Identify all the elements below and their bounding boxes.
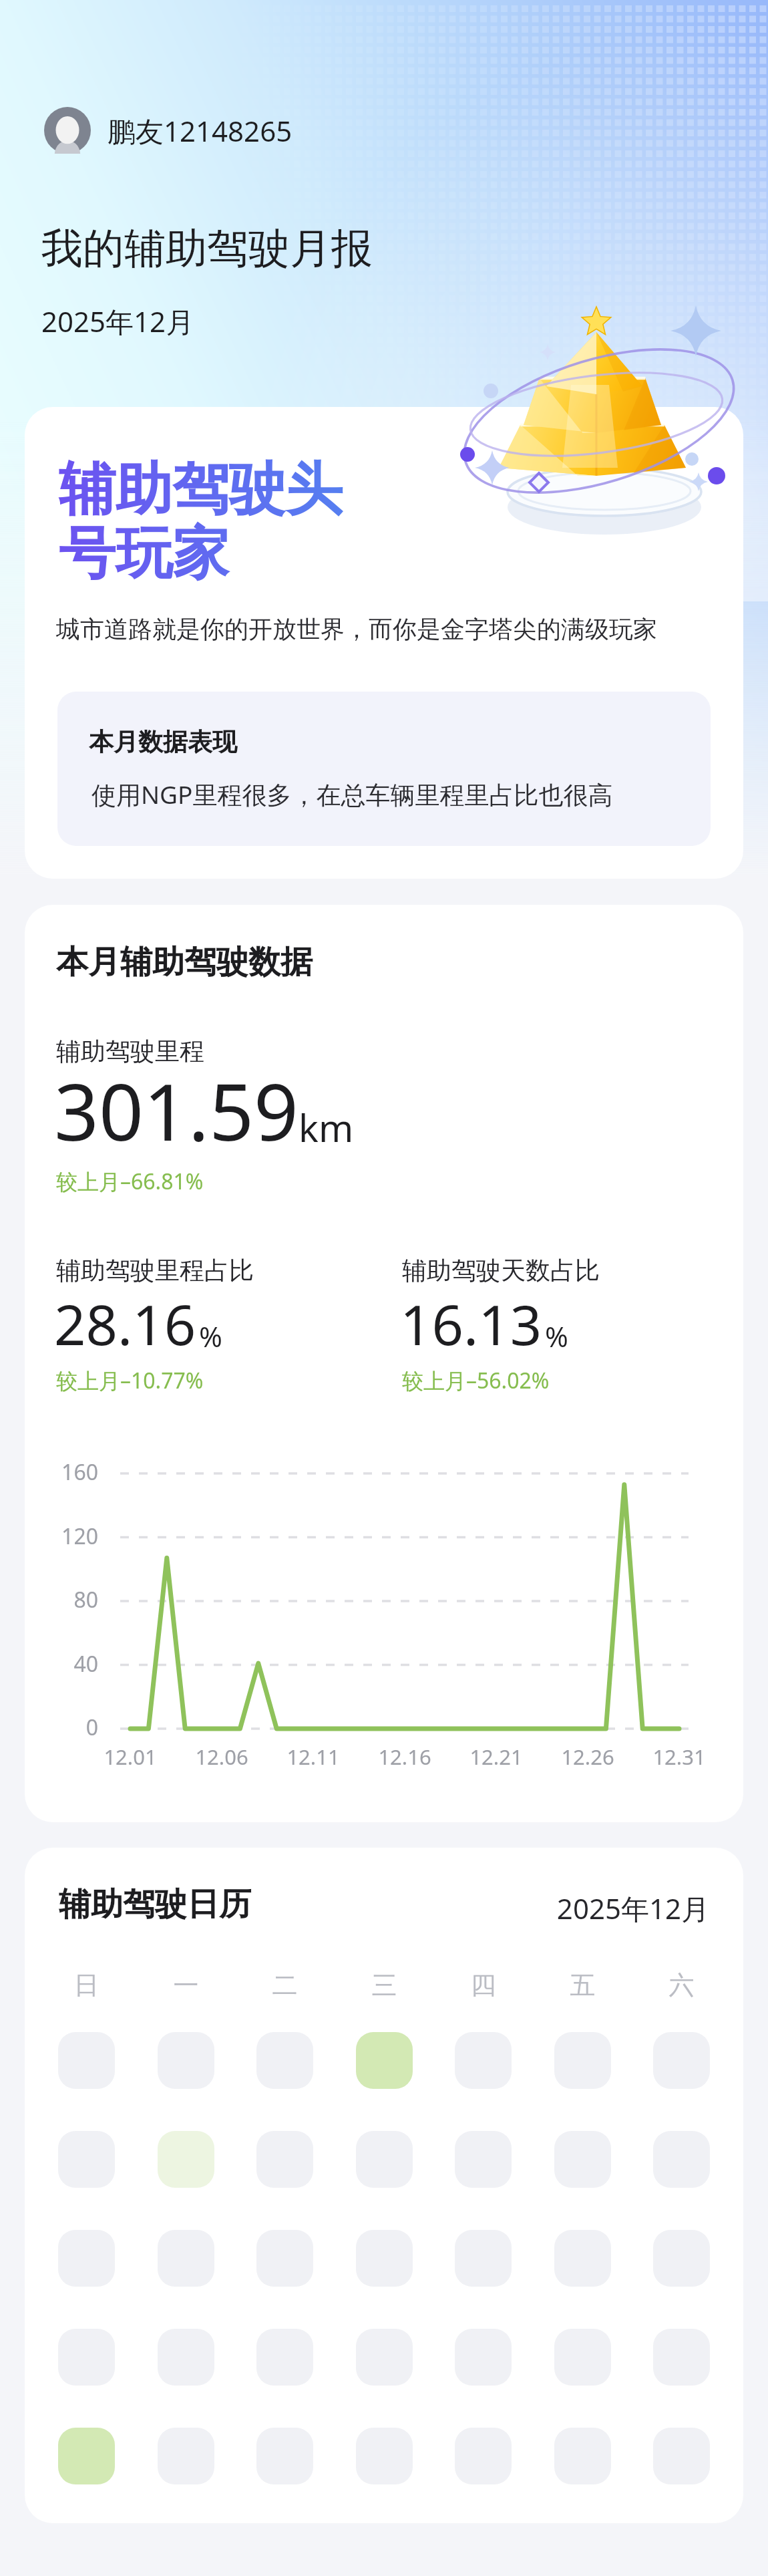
staticText: 使用NGP里程很多，在总车辆里程里占比也很高 [91, 777, 613, 811]
staticText: 12.11 [266, 1743, 360, 1771]
button[interactable] [653, 2131, 710, 2188]
staticText: 2025年12月 [41, 302, 194, 340]
staticText: 六 [653, 1969, 710, 2001]
staticText: 一 [158, 1969, 214, 2001]
staticText: 三 [356, 1969, 413, 2001]
button[interactable] [455, 2131, 512, 2188]
button[interactable] [356, 2428, 413, 2484]
button[interactable] [58, 2230, 115, 2287]
staticText: 28.16 [54, 1286, 196, 1361]
button[interactable] [158, 2329, 214, 2386]
staticText: 辅助驾驶天数占比 [402, 1255, 600, 1286]
button[interactable] [554, 2032, 611, 2089]
staticText: 12.31 [632, 1743, 726, 1771]
staticText: 12.16 [358, 1743, 451, 1771]
staticText: 四 [455, 1969, 512, 2001]
staticText: 五 [554, 1969, 611, 2001]
button[interactable] [554, 2131, 611, 2188]
staticText: 日 [58, 1969, 115, 2001]
staticText: 辅助驾驶日历 [59, 1884, 251, 1924]
button[interactable] [256, 2131, 313, 2188]
button[interactable]: 辅助驾驶头 号玩家 [25, 407, 743, 879]
button[interactable] [653, 2428, 710, 2484]
staticText: 80 [25, 1585, 98, 1614]
button[interactable] [256, 2032, 313, 2089]
button[interactable] [158, 2230, 214, 2287]
button[interactable] [554, 2230, 611, 2287]
button[interactable] [356, 2230, 413, 2287]
button[interactable]: 辅助驾驶日历 [25, 1848, 743, 2523]
staticText: 16.13 [400, 1286, 542, 1361]
button[interactable] [58, 2329, 115, 2386]
button[interactable] [356, 2131, 413, 2188]
staticText: 较上月–56.02% [402, 1366, 550, 1395]
staticText: km [299, 1102, 354, 1153]
button[interactable] [653, 2032, 710, 2089]
button[interactable] [356, 2329, 413, 2386]
staticText: 12.01 [83, 1743, 177, 1771]
button[interactable]: 本月辅助驾驶数据 [25, 905, 743, 1822]
staticText: 较上月–66.81% [56, 1167, 204, 1196]
button[interactable] [58, 2032, 115, 2089]
staticText: 0 [25, 1713, 98, 1742]
button[interactable] [554, 2428, 611, 2484]
staticText: 本月数据表现 [89, 726, 237, 758]
button[interactable] [653, 2230, 710, 2287]
staticText: 本月辅助驾驶数据 [56, 942, 313, 982]
button[interactable] [158, 2032, 214, 2089]
staticText: 城市道路就是你的开放世界，而你是金字塔尖的满级玩家 [56, 614, 657, 644]
button[interactable] [356, 2032, 413, 2089]
staticText: 2025年12月 [492, 1889, 709, 1927]
staticText: 301.59 [54, 1057, 299, 1163]
button[interactable] [554, 2329, 611, 2386]
staticText: % [199, 1317, 222, 1355]
staticText: 二 [256, 1969, 313, 2001]
button[interactable] [455, 2428, 512, 2484]
staticText: 辅助驾驶里程占比 [56, 1255, 254, 1286]
staticText: 辅助驾驶头 号玩家 [59, 454, 343, 590]
staticText: 40 [25, 1649, 98, 1679]
button[interactable] [455, 2329, 512, 2386]
button[interactable] [58, 2428, 115, 2484]
staticText: 辅助驾驶里程 [56, 1036, 204, 1067]
staticText: 160 [25, 1457, 98, 1487]
button[interactable] [653, 2329, 710, 2386]
staticText: % [545, 1317, 568, 1355]
button[interactable] [58, 2131, 115, 2188]
staticText: 12.26 [541, 1743, 634, 1771]
button[interactable] [455, 2230, 512, 2287]
staticText: 12.21 [449, 1743, 543, 1771]
button[interactable] [256, 2329, 313, 2386]
staticText: 我的辅助驾驶月报 [41, 223, 373, 275]
button[interactable] [256, 2230, 313, 2287]
staticText: 较上月–10.77% [56, 1366, 204, 1395]
staticText: 120 [25, 1522, 98, 1551]
button[interactable] [158, 2131, 214, 2188]
button[interactable] [158, 2428, 214, 2484]
button[interactable] [256, 2428, 313, 2484]
staticText: 12.06 [175, 1743, 268, 1771]
staticText: 鹏友12148265 [108, 112, 293, 150]
button[interactable] [455, 2032, 512, 2089]
